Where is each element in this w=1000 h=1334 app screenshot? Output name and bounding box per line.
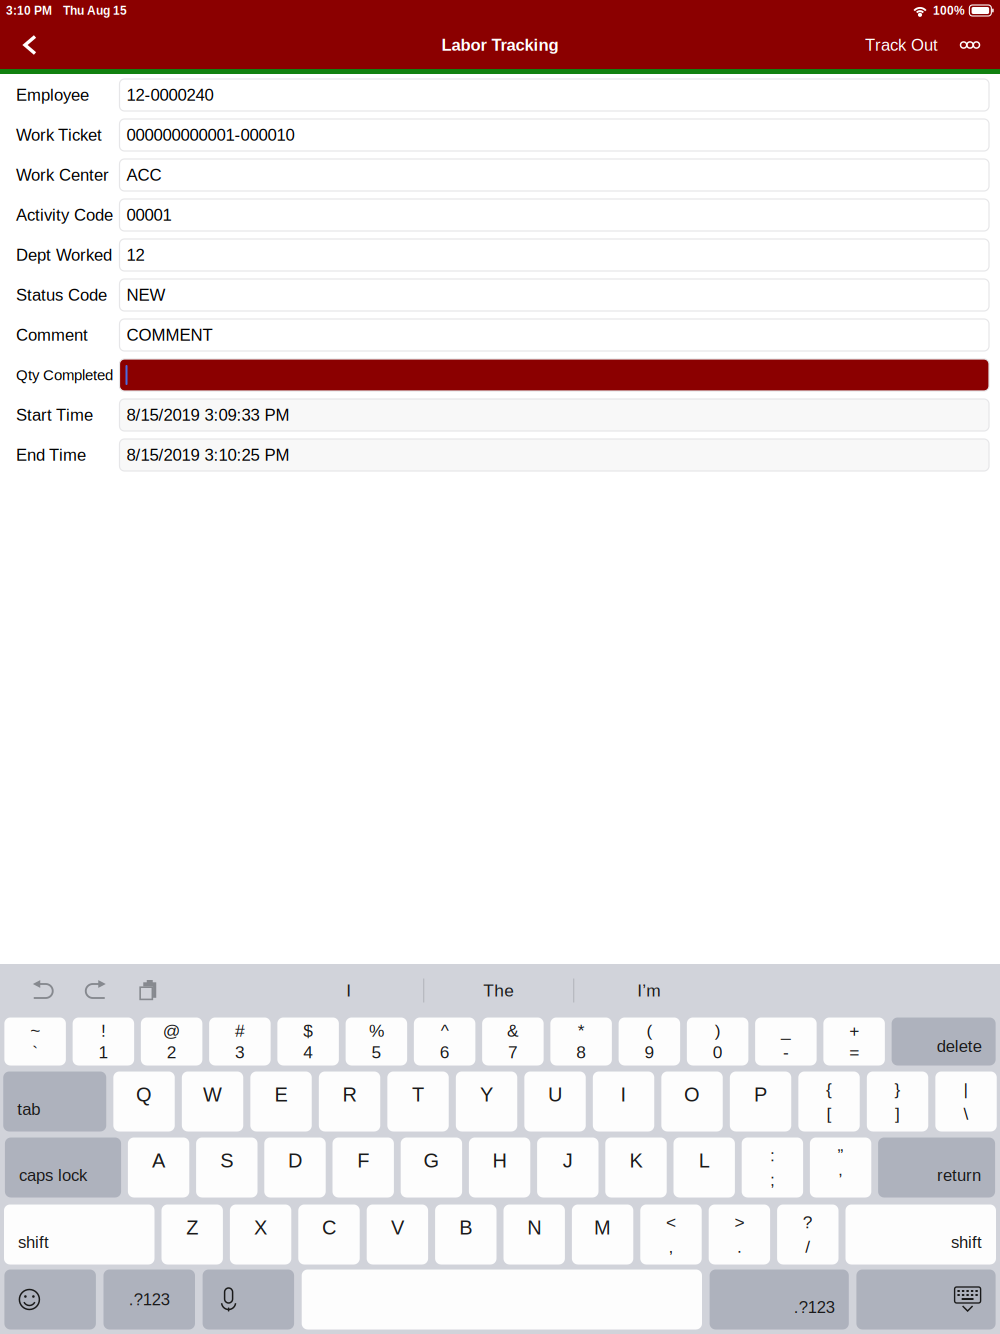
staticText: 1 (98, 1042, 108, 1062)
button[interactable]: ^ (414, 1017, 475, 1065)
button[interactable]: W (182, 1071, 243, 1131)
button[interactable]: I’m (574, 968, 723, 1012)
button[interactable]: ( (619, 1017, 680, 1065)
staticText: # (235, 1021, 245, 1040)
staticText: < (666, 1213, 676, 1232)
button[interactable]: F (332, 1137, 394, 1197)
button[interactable]: H (469, 1137, 530, 1197)
button[interactable]: caps lock (5, 1137, 121, 1197)
staticText: D (288, 1149, 302, 1172)
button[interactable]: G (401, 1137, 462, 1197)
button[interactable]: shift (4, 1204, 154, 1264)
button[interactable]: | (935, 1071, 997, 1131)
button[interactable]: N (503, 1204, 565, 1264)
button[interactable]: O (661, 1071, 723, 1131)
button[interactable]: D (264, 1137, 326, 1197)
button[interactable]: Q (113, 1071, 175, 1131)
button[interactable]: tab (3, 1071, 106, 1131)
button[interactable]: delete (892, 1017, 996, 1065)
button[interactable]: ” (810, 1137, 871, 1197)
button[interactable]: shift (845, 1204, 996, 1264)
staticText: 12-0000240 (126, 86, 213, 104)
staticText: 2 (167, 1042, 177, 1062)
button[interactable]: ? (777, 1204, 838, 1264)
button[interactable]: : (742, 1137, 803, 1197)
staticText: H (493, 1149, 507, 1172)
staticText: 8/15/2019 3:09:33 PM (126, 406, 289, 424)
button[interactable]: Y (456, 1071, 517, 1131)
button[interactable]: } (867, 1071, 928, 1131)
button[interactable]: P (730, 1071, 791, 1131)
staticText: I (346, 981, 351, 1000)
button[interactable]: C (298, 1204, 360, 1264)
button[interactable]: Z (161, 1204, 223, 1264)
staticText: Activity Code (16, 206, 113, 224)
button[interactable]: E (250, 1071, 312, 1131)
button[interactable]: Track Out (865, 23, 938, 67)
button[interactable]: % (346, 1017, 407, 1065)
staticText: [ (827, 1104, 832, 1123)
button[interactable]: K (605, 1137, 667, 1197)
button[interactable]: Emoji (4, 1269, 96, 1329)
staticText: U (548, 1083, 562, 1106)
button[interactable]: U (524, 1071, 586, 1131)
button[interactable]: # (209, 1017, 271, 1065)
button[interactable]: Hide keyboard (856, 1269, 996, 1329)
button[interactable]: ~ (4, 1017, 66, 1065)
staticText: 6 (440, 1042, 450, 1062)
staticText: 5 (371, 1042, 381, 1062)
button[interactable]: Paste (131, 970, 165, 1010)
button[interactable]: { (798, 1071, 860, 1131)
button[interactable]: Redo (78, 970, 112, 1010)
staticText: .?123 (129, 1290, 170, 1309)
button[interactable]: .?123 (103, 1269, 195, 1329)
button[interactable]: I (593, 1071, 654, 1131)
staticText: N (527, 1216, 541, 1239)
button[interactable]: + (823, 1017, 885, 1065)
button[interactable]: & (482, 1017, 544, 1065)
button[interactable]: M (572, 1204, 633, 1264)
button[interactable]: < (640, 1204, 702, 1264)
button[interactable]: ) (687, 1017, 748, 1065)
button[interactable]: @ (141, 1017, 202, 1065)
staticText: . (737, 1237, 742, 1256)
staticText: $ (303, 1021, 313, 1040)
staticText: L (699, 1149, 710, 1172)
staticText: F (357, 1149, 369, 1172)
button[interactable]: S (196, 1137, 257, 1197)
staticText: W (203, 1083, 222, 1106)
staticText: \ (964, 1104, 969, 1123)
button[interactable]: The (424, 968, 573, 1012)
button[interactable]: More options (948, 21, 992, 69)
button[interactable]: Dictation (203, 1269, 294, 1329)
staticText: Dept Worked (16, 246, 112, 264)
staticText: & (507, 1021, 519, 1040)
button[interactable]: I (274, 968, 423, 1012)
staticText: ) (715, 1021, 721, 1040)
staticText: Qty Completed (16, 367, 113, 383)
button[interactable]: A (128, 1137, 189, 1197)
button[interactable]: Back (0, 21, 60, 69)
staticText: tab (17, 1100, 40, 1118)
button[interactable]: > (709, 1204, 770, 1264)
button[interactable]: ! (73, 1017, 134, 1065)
staticText: Work Ticket (16, 126, 102, 144)
button[interactable]: .?123 (710, 1269, 849, 1329)
button[interactable]: B (435, 1204, 496, 1264)
button[interactable]: _ (755, 1017, 817, 1065)
staticText: X (254, 1216, 267, 1239)
button[interactable]: T (387, 1071, 449, 1131)
button[interactable]: $ (277, 1017, 339, 1065)
staticText: > (734, 1213, 744, 1232)
button[interactable]: R (319, 1071, 380, 1131)
button[interactable]: X (230, 1204, 291, 1264)
button[interactable]: * (550, 1017, 612, 1065)
staticText: : (770, 1146, 775, 1165)
button[interactable]: return (878, 1137, 995, 1197)
staticText: P (754, 1083, 767, 1106)
button[interactable]: J (537, 1137, 598, 1197)
button[interactable]: Undo (26, 970, 60, 1010)
button[interactable]: V (367, 1204, 428, 1264)
button[interactable]: L (673, 1137, 735, 1197)
